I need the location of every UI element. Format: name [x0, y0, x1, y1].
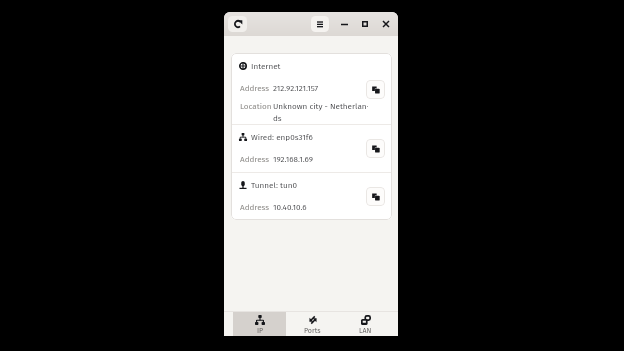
- staticText: LAN: [359, 326, 372, 334]
- staticText: 212.92.121.157: [273, 83, 319, 93]
- staticText: Tunnel: tun0: [251, 180, 297, 189]
- staticText: Wired: enp0s31f6: [251, 132, 313, 141]
- staticText: Address: [240, 154, 273, 164]
- button[interactable]: Ports: [286, 312, 339, 336]
- staticText: 10.40.10.6: [273, 202, 307, 212]
- button[interactable]: Close: [378, 16, 394, 32]
- staticText: Location: [240, 101, 273, 111]
- button[interactable]: Minimize: [336, 16, 352, 32]
- button[interactable]: Copy: [366, 139, 385, 158]
- staticText: Internet: [251, 61, 281, 70]
- button[interactable]: IP: [233, 312, 286, 336]
- button[interactable]: Copy: [366, 80, 385, 99]
- staticText: Ports: [304, 326, 321, 334]
- staticText: IP: [257, 326, 264, 334]
- button[interactable]: LAN: [339, 312, 392, 336]
- staticText: Address: [240, 202, 273, 212]
- button[interactable]: Copy: [366, 187, 385, 206]
- staticText: Address: [240, 83, 273, 93]
- staticText: 192.168.1.69: [273, 154, 313, 164]
- staticText: ds: [273, 113, 282, 123]
- button[interactable]: Maximize: [357, 16, 373, 32]
- button[interactable]: Menu: [311, 16, 329, 32]
- staticText: Unknown city - Netherlan-: [273, 101, 368, 111]
- button[interactable]: Refresh: [228, 16, 247, 32]
